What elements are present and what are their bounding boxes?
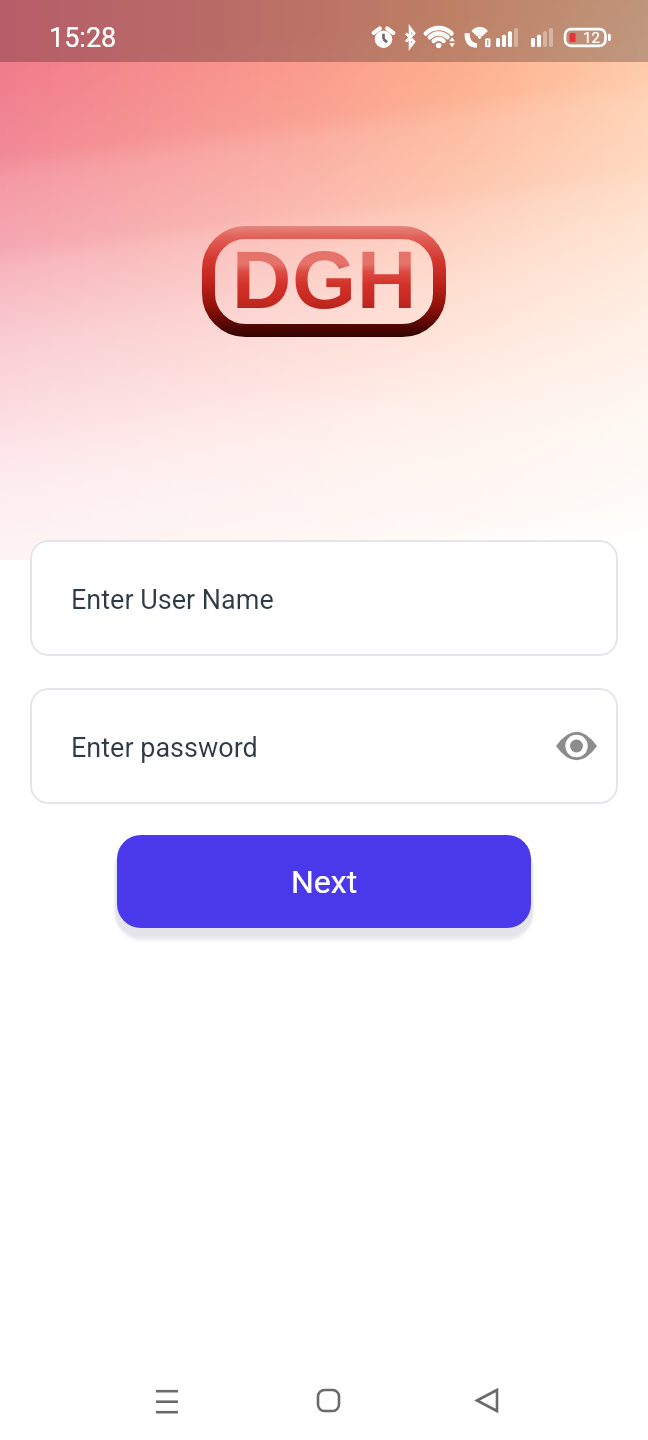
staticText: 12 xyxy=(583,29,600,47)
button[interactable]: Enter User Name xyxy=(30,540,618,656)
button[interactable]: Show password xyxy=(548,718,604,774)
button[interactable]: Enter password xyxy=(30,688,618,804)
staticText: Enter password xyxy=(71,732,258,764)
staticText: DGH xyxy=(232,234,418,326)
button[interactable]: Recents xyxy=(135,1368,199,1432)
button[interactable]: Next xyxy=(117,835,531,928)
staticText: Next xyxy=(291,863,358,901)
button[interactable]: Home xyxy=(296,1368,360,1432)
staticText: Enter User Name xyxy=(71,584,274,616)
button[interactable]: Back xyxy=(455,1368,519,1432)
staticText: 15:28 xyxy=(49,22,117,54)
